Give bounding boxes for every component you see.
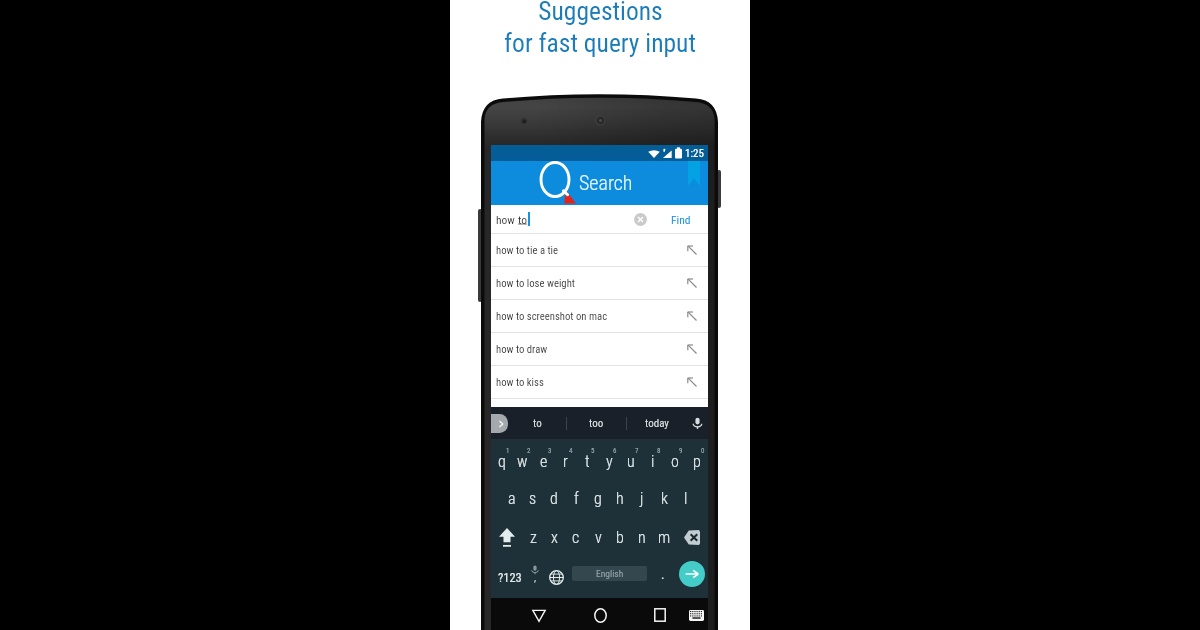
staticText: 9 xyxy=(679,447,683,455)
staticText: i xyxy=(651,452,655,471)
button[interactable]: 9 xyxy=(664,439,686,479)
button[interactable]: . xyxy=(651,557,675,598)
staticText: w xyxy=(517,452,528,471)
staticText: p xyxy=(693,452,701,471)
button[interactable]: 4 xyxy=(554,439,576,479)
staticText: Find xyxy=(671,213,691,226)
button[interactable]: 1 xyxy=(491,439,512,479)
staticText: t xyxy=(585,452,590,471)
button[interactable]: v xyxy=(587,518,609,557)
button[interactable]: Keyboard xyxy=(681,598,711,630)
button[interactable]: c xyxy=(565,518,587,557)
button[interactable]: h xyxy=(609,479,631,518)
staticText: v xyxy=(595,528,602,547)
staticText: a xyxy=(508,489,516,508)
button[interactable]: how xyxy=(491,205,708,233)
staticText: 0 xyxy=(701,447,705,455)
staticText: x xyxy=(551,528,558,547)
staticText: m xyxy=(658,528,671,547)
button[interactable]: Backspace xyxy=(675,518,708,557)
staticText: r xyxy=(563,452,568,471)
staticText: 8 xyxy=(657,447,661,455)
button[interactable]: n xyxy=(631,518,653,557)
staticText: , xyxy=(534,571,537,584)
staticText: l xyxy=(684,489,688,508)
staticText: how to screenshot on mac xyxy=(496,310,608,323)
staticText: 1:25 xyxy=(685,147,704,160)
staticText: 5 xyxy=(591,447,595,455)
staticText: how xyxy=(496,213,518,226)
staticText: Search xyxy=(579,171,633,194)
staticText: u xyxy=(627,452,635,471)
staticText: c xyxy=(572,528,580,547)
button[interactable]: g xyxy=(587,479,609,518)
staticText: o xyxy=(671,452,679,471)
button[interactable]: ?123 xyxy=(493,557,526,598)
button[interactable]: Shift xyxy=(491,518,523,557)
button[interactable]: Voice typing xyxy=(522,557,548,598)
button[interactable]: 8 xyxy=(642,439,664,479)
button[interactable]: m xyxy=(653,518,675,557)
button[interactable]: how to screenshot on mac xyxy=(491,300,708,332)
button[interactable]: Clear query xyxy=(634,213,647,226)
staticText: d xyxy=(550,489,558,508)
button[interactable]: d xyxy=(543,479,565,518)
staticText: g xyxy=(594,489,602,508)
button[interactable]: b xyxy=(609,518,631,557)
button[interactable]: how to tie a tie xyxy=(491,234,708,266)
button[interactable]: English xyxy=(572,566,647,581)
button[interactable]: Voice input xyxy=(686,407,708,439)
staticText: today xyxy=(645,417,669,430)
staticText: j xyxy=(640,489,644,508)
button[interactable]: Recent apps xyxy=(644,598,676,630)
button[interactable]: s xyxy=(522,479,543,518)
button[interactable]: how to lose weight xyxy=(491,267,708,299)
staticText: n xyxy=(638,528,646,547)
staticText: 4 xyxy=(569,447,573,455)
staticText: f xyxy=(574,489,579,508)
button[interactable]: j xyxy=(631,479,653,518)
staticText: 2 xyxy=(527,447,531,455)
button[interactable]: Back xyxy=(523,598,555,630)
button[interactable]: 7 xyxy=(620,439,642,479)
button[interactable]: to xyxy=(508,407,566,439)
button[interactable]: 6 xyxy=(598,439,620,479)
staticText: 7 xyxy=(635,447,639,455)
staticText: . xyxy=(661,567,665,582)
button[interactable]: Search xyxy=(679,561,705,587)
button[interactable]: 5 xyxy=(576,439,598,479)
staticText: to xyxy=(518,213,528,226)
button[interactable]: Home xyxy=(584,598,616,630)
staticText: 3 xyxy=(548,447,552,455)
staticText: b xyxy=(616,528,624,547)
button[interactable]: how to draw xyxy=(491,333,708,365)
button[interactable]: x xyxy=(544,518,565,557)
staticText: too xyxy=(589,417,604,430)
staticText: 6 xyxy=(613,447,617,455)
button[interactable]: z xyxy=(523,518,544,557)
button[interactable]: f xyxy=(565,479,587,518)
button[interactable]: today xyxy=(627,407,686,439)
button[interactable]: 3 xyxy=(533,439,554,479)
button[interactable]: Switch language xyxy=(543,557,569,598)
button[interactable]: Bookmarks xyxy=(688,161,700,186)
staticText: how to kiss xyxy=(496,376,544,389)
button[interactable]: l xyxy=(675,479,697,518)
staticText: how to lose weight xyxy=(496,277,575,290)
button[interactable]: k xyxy=(653,479,675,518)
button[interactable]: a xyxy=(501,479,522,518)
staticText: English xyxy=(596,568,624,579)
staticText: 1 xyxy=(506,447,510,455)
staticText: k xyxy=(661,489,668,508)
staticText: h xyxy=(616,489,624,508)
button[interactable]: too xyxy=(567,407,626,439)
staticText: for fast query input xyxy=(504,28,696,58)
staticText: how to draw xyxy=(496,343,548,356)
staticText: e xyxy=(540,452,548,471)
staticText: how to tie a tie xyxy=(496,244,559,257)
staticText: to xyxy=(533,417,542,430)
button[interactable]: how to kiss xyxy=(491,366,708,398)
button[interactable]: 0 xyxy=(686,439,708,479)
button[interactable]: 2 xyxy=(512,439,533,479)
button[interactable]: More suggestions xyxy=(491,414,508,433)
